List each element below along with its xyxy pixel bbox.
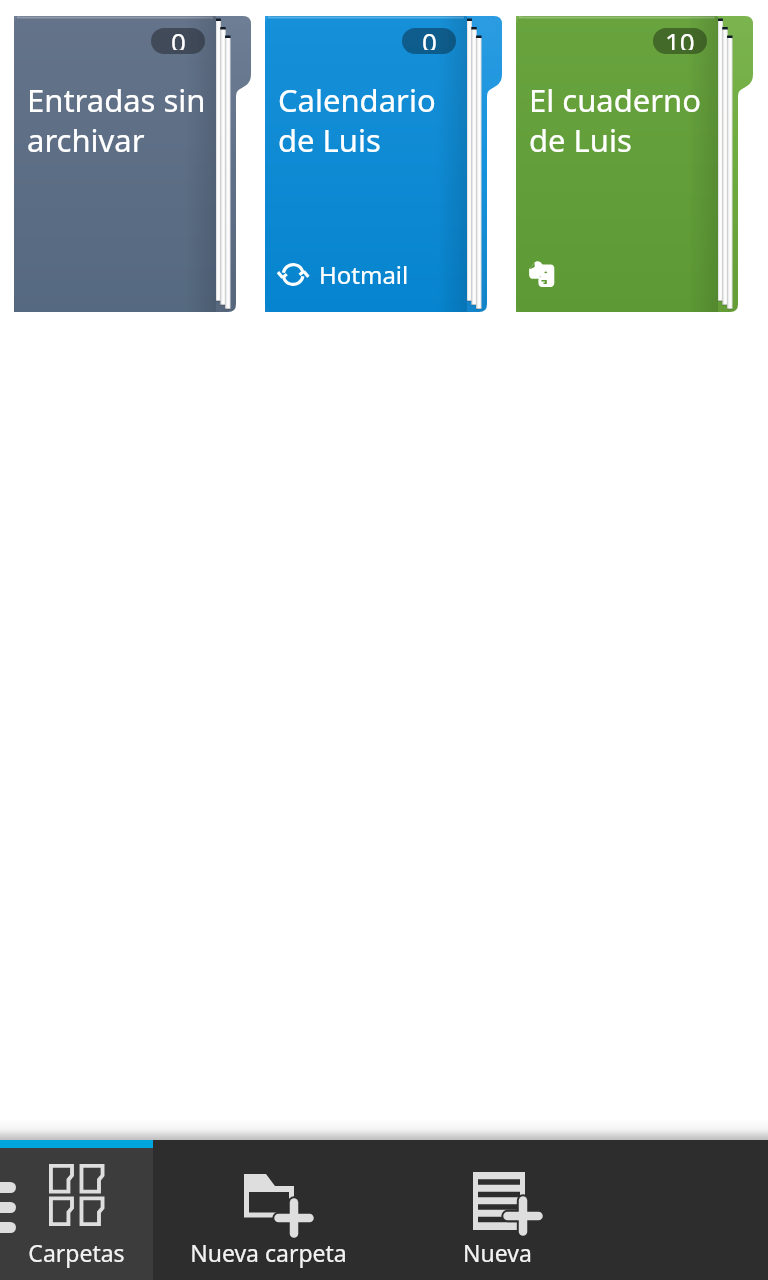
staticText: Nueva (463, 1237, 532, 1268)
staticText: 0 (171, 28, 186, 50)
button[interactable]: 0 (265, 0, 502, 328)
staticText: Calendario de Luis (278, 79, 436, 161)
button[interactable]: 10 (516, 0, 753, 328)
staticText: 0 (422, 28, 437, 50)
staticText: Entradas sin archivar (27, 79, 206, 161)
staticText: Hotmail (319, 258, 409, 291)
button[interactable]: Nueva (383, 1148, 612, 1280)
staticText: El cuaderno de Luis (529, 79, 701, 161)
staticText: Nueva carpeta (190, 1237, 347, 1268)
button[interactable]: Carpetas (0, 1148, 153, 1280)
button[interactable]: 0 (14, 0, 251, 328)
button[interactable]: Nueva carpeta (153, 1148, 383, 1280)
staticText: 10 (665, 28, 695, 50)
staticText: Carpetas (28, 1237, 125, 1268)
